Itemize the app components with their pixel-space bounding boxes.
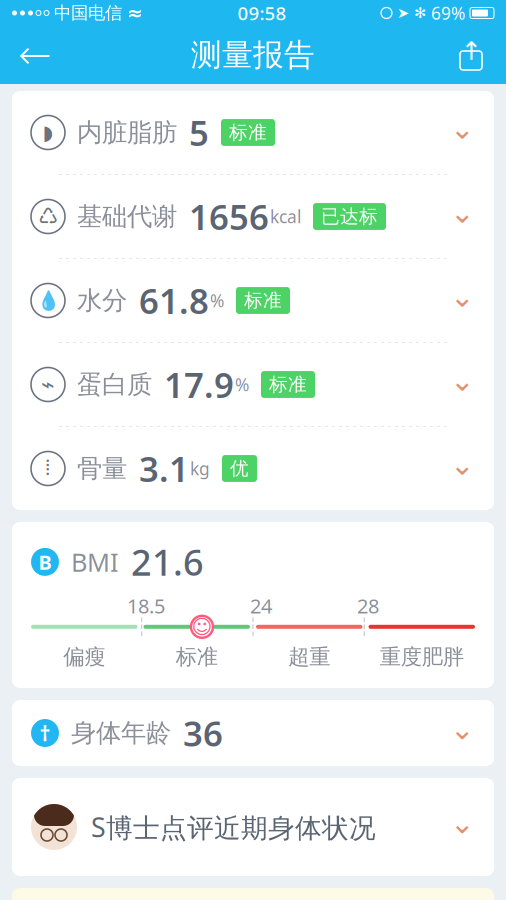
staticText: 超重 <box>288 644 330 670</box>
staticText: 基础代谢 <box>77 201 177 232</box>
staticText: kg <box>190 457 210 480</box>
staticText: 蛋白质 <box>77 369 152 400</box>
staticText: ✻ <box>414 5 426 21</box>
staticText: 17.9 <box>164 361 234 407</box>
staticText: 优 <box>230 457 249 480</box>
button[interactable]: Back <box>8 28 62 82</box>
staticText: ⌄ <box>450 112 475 145</box>
staticText: ♺ <box>38 204 58 229</box>
staticText: 5 <box>189 109 209 155</box>
staticText: 18.5 <box>127 592 165 619</box>
staticText: ◗ <box>42 121 53 144</box>
staticText: 身体年龄 <box>71 717 171 749</box>
staticText: BMI <box>71 545 119 579</box>
staticText: 21.6 <box>131 538 204 586</box>
staticText: 标准 <box>176 644 218 670</box>
staticText: 09:58 <box>237 1 286 25</box>
staticText: ☺ <box>191 615 212 638</box>
button[interactable]: ⌁ <box>12 343 494 426</box>
staticText: ⌄ <box>450 806 475 840</box>
staticText: S博士点评近期身体状况 <box>91 809 376 845</box>
staticText: ⌄ <box>450 196 475 229</box>
staticText: % <box>235 373 249 396</box>
staticText: 标准 <box>244 289 282 312</box>
staticText: ⌄ <box>450 712 475 746</box>
staticText: ➤ <box>397 5 409 21</box>
staticText: 骨量 <box>77 453 127 484</box>
staticText: 1656 <box>189 193 269 239</box>
button[interactable]: S博士点评近期身体状况 <box>12 778 494 876</box>
staticText: 中国电信 <box>54 2 122 24</box>
staticText: ⌄ <box>450 280 475 313</box>
staticText: ⌄ <box>450 448 475 481</box>
staticText: 61.8 <box>139 277 209 323</box>
staticText: ≈ <box>127 2 143 24</box>
staticText: 💧 <box>36 290 59 311</box>
staticText: 测量报告 <box>191 36 315 74</box>
staticText: † <box>39 719 50 747</box>
staticText: 已达标 <box>321 205 378 228</box>
button[interactable]: 💧 <box>12 259 494 342</box>
staticText: 内脏脂肪 <box>77 117 177 148</box>
staticText: 水分 <box>77 285 127 316</box>
staticText: 28 <box>357 592 379 619</box>
button[interactable]: ♺ <box>12 175 494 258</box>
staticText: % <box>210 289 224 312</box>
button[interactable]: ⦙ <box>12 427 494 510</box>
staticText: 重度肥胖 <box>380 644 464 670</box>
button[interactable]: † <box>12 700 494 766</box>
staticText: B <box>38 549 51 575</box>
staticText: ⦙ <box>45 458 50 479</box>
staticText: ↑ <box>460 37 481 65</box>
staticText: 偏瘦 <box>63 644 105 670</box>
staticText: 标准 <box>229 121 267 144</box>
staticText: ⌁ <box>41 372 55 397</box>
staticText: 69% <box>431 1 465 24</box>
staticText: 24 <box>250 592 272 619</box>
staticText: kcal <box>270 205 301 228</box>
staticText: 标准 <box>269 373 307 396</box>
button[interactable]: Share <box>444 28 498 82</box>
staticText: ← <box>18 32 52 78</box>
staticText: ⌄ <box>450 364 475 397</box>
button[interactable]: ◗ <box>12 91 494 174</box>
staticText: 36 <box>183 710 223 756</box>
staticText: 3.1 <box>139 445 189 491</box>
